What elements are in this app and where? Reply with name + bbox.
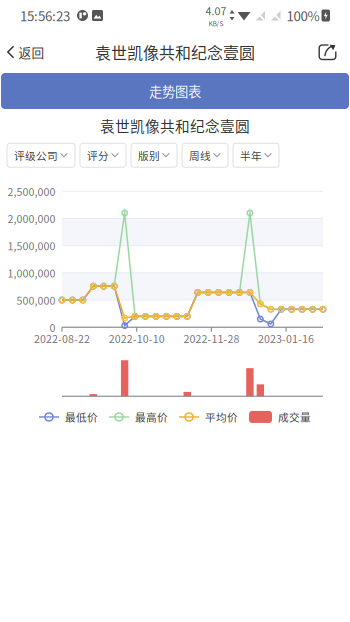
staticText: 4.07 bbox=[205, 3, 226, 18]
staticText: 1,500,000 bbox=[7, 238, 55, 253]
staticText: 返回 bbox=[18, 43, 44, 61]
staticText: 1,000,000 bbox=[7, 265, 55, 280]
staticText: 评级公司 bbox=[14, 147, 58, 163]
staticText: 2,500,000 bbox=[7, 183, 55, 199]
staticText: 2022-11-28 bbox=[183, 330, 239, 346]
staticText: 2022-08-22 bbox=[34, 330, 90, 346]
staticText: 2,000,000 bbox=[7, 211, 55, 226]
button[interactable]: 返回 bbox=[0, 35, 51, 69]
staticText: 100% bbox=[286, 6, 319, 25]
staticText: 500,000 bbox=[16, 292, 55, 308]
staticText: 2023-01-16 bbox=[258, 330, 314, 346]
button[interactable]: 分享 bbox=[306, 36, 350, 68]
staticText: 2022-10-10 bbox=[109, 330, 165, 346]
staticText: 最低价 bbox=[65, 409, 98, 425]
staticText: 最高价 bbox=[135, 409, 168, 425]
button[interactable]: 版别 bbox=[131, 143, 177, 167]
staticText: 半年 bbox=[240, 147, 262, 163]
staticText: 版别 bbox=[138, 147, 160, 163]
staticText: KB/S bbox=[208, 18, 223, 28]
button[interactable]: 半年 bbox=[233, 143, 279, 167]
staticText: 成交量 bbox=[278, 409, 311, 425]
staticText: 评分 bbox=[87, 147, 109, 163]
staticText: 袁世凯像共和纪念壹圆 bbox=[95, 40, 255, 64]
staticText: 袁世凯像共和纪念壹圆 bbox=[100, 115, 250, 136]
button[interactable]: 走势图表 bbox=[1, 73, 349, 109]
staticText: 15:56:23 bbox=[20, 6, 70, 25]
staticText: 周线 bbox=[189, 147, 211, 163]
button[interactable]: 周线 bbox=[182, 143, 228, 167]
button[interactable]: 评级公司 bbox=[7, 143, 75, 167]
staticText: 平均价 bbox=[205, 409, 238, 425]
button[interactable]: 评分 bbox=[80, 143, 126, 167]
staticText: 走势图表 bbox=[149, 81, 201, 101]
staticText: 0 bbox=[49, 319, 55, 335]
